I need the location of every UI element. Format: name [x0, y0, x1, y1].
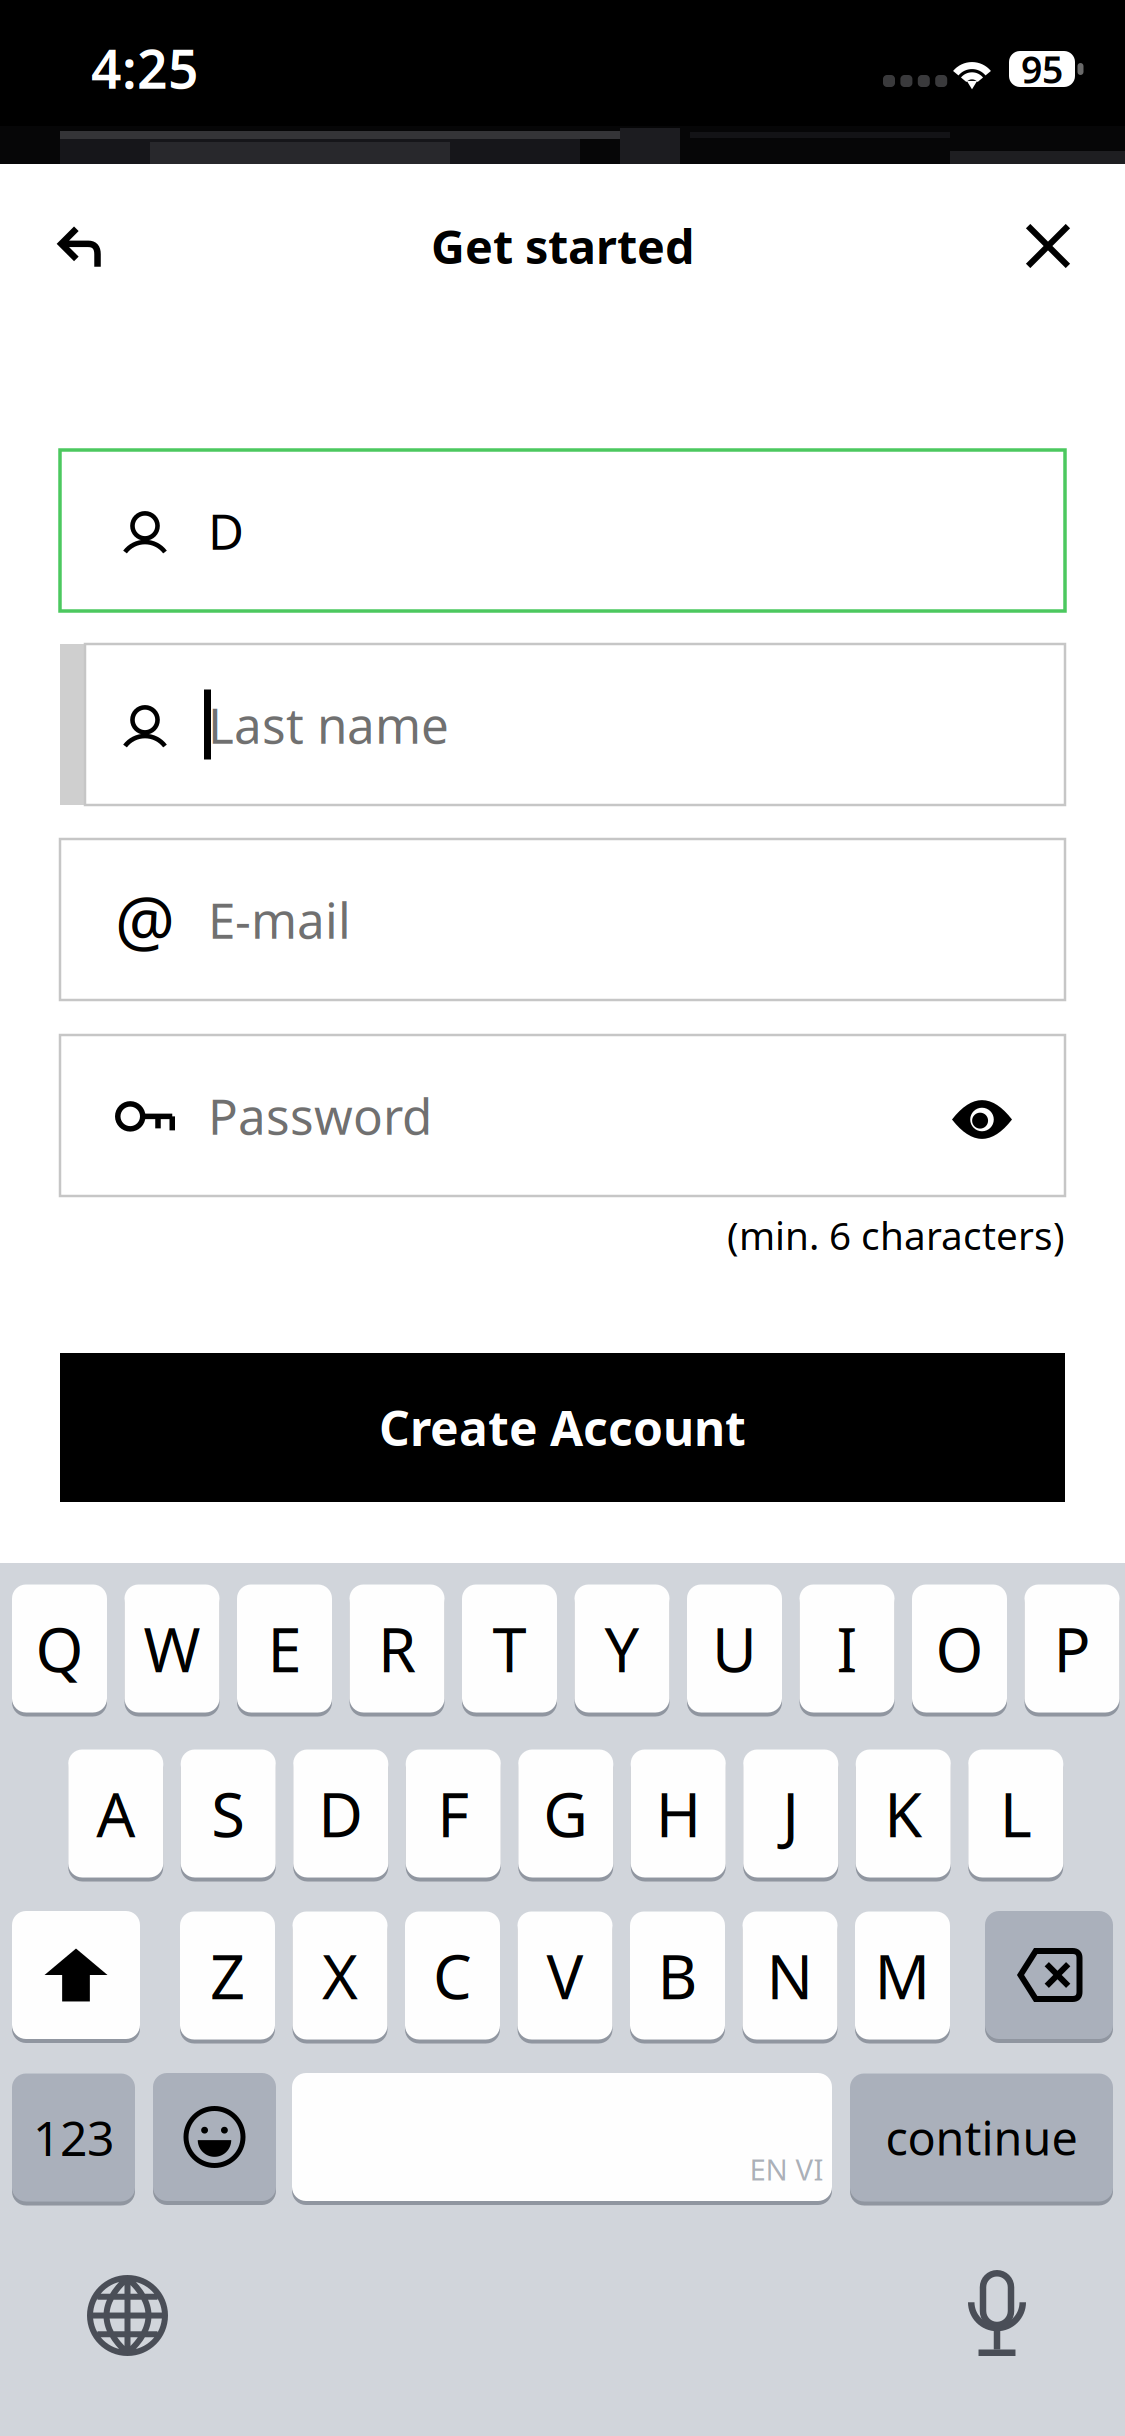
- button[interactable]: Last name: [85, 644, 1065, 805]
- staticText: Create Account: [379, 1396, 746, 1459]
- button[interactable]: Delete: [985, 1911, 1113, 2044]
- staticText: W: [143, 1608, 200, 1689]
- staticText: EN VI: [749, 2149, 823, 2188]
- button[interactable]: Y: [574, 1584, 669, 1716]
- staticText: continue: [885, 2106, 1077, 2168]
- staticText: N: [766, 1935, 813, 2016]
- button[interactable]: T: [462, 1584, 557, 1716]
- button[interactable]: K: [856, 1749, 951, 1881]
- button[interactable]: X: [292, 1911, 387, 2043]
- staticText: P: [1053, 1608, 1090, 1689]
- staticText: U: [712, 1608, 757, 1689]
- button[interactable]: Next keyboard: [87, 2275, 168, 2356]
- button[interactable]: I: [799, 1584, 894, 1716]
- button[interactable]: Close: [1006, 204, 1090, 288]
- button[interactable]: Shift: [12, 1911, 140, 2044]
- staticText: V: [546, 1935, 583, 2016]
- staticText: R: [378, 1608, 416, 1689]
- staticText: Y: [604, 1608, 639, 1689]
- staticText: E-mail: [208, 887, 351, 952]
- button[interactable]: @: [60, 839, 1065, 1000]
- button[interactable]: 123: [12, 2073, 135, 2205]
- staticText: 4:25: [91, 33, 199, 103]
- staticText: Get started: [431, 215, 694, 277]
- button[interactable]: Q: [12, 1584, 107, 1716]
- button[interactable]: Dictate: [969, 2270, 1025, 2356]
- button[interactable]: Show password: [927, 1035, 1037, 1196]
- button[interactable]: V: [517, 1911, 612, 2043]
- button[interactable]: E: [237, 1584, 332, 1716]
- button[interactable]: J: [743, 1749, 838, 1881]
- button[interactable]: U: [687, 1584, 782, 1716]
- button[interactable]: A: [68, 1749, 163, 1881]
- button[interactable]: C: [405, 1911, 500, 2043]
- staticText: C: [433, 1935, 472, 2016]
- button[interactable]: continue: [850, 2073, 1113, 2205]
- button[interactable]: D: [60, 450, 1065, 611]
- button[interactable]: L: [968, 1749, 1063, 1881]
- button[interactable]: F: [406, 1749, 501, 1881]
- button[interactable]: B: [630, 1911, 725, 2043]
- staticText: B: [657, 1935, 697, 2016]
- staticText: X: [322, 1935, 358, 2016]
- button[interactable]: Space: [292, 2073, 832, 2206]
- staticText: E: [267, 1608, 301, 1689]
- button[interactable]: Z: [180, 1911, 275, 2043]
- staticText: G: [543, 1773, 588, 1854]
- staticText: S: [211, 1773, 245, 1854]
- button[interactable]: M: [855, 1911, 950, 2043]
- staticText: I: [836, 1608, 857, 1689]
- staticText: F: [437, 1773, 469, 1854]
- staticText: T: [492, 1608, 526, 1689]
- staticText: D: [318, 1773, 363, 1854]
- button[interactable]: W: [124, 1584, 219, 1716]
- staticText: A: [96, 1773, 135, 1854]
- staticText: O: [935, 1608, 983, 1689]
- staticText: Password: [208, 1083, 432, 1148]
- staticText: 123: [33, 2106, 114, 2169]
- button[interactable]: N: [742, 1911, 837, 2043]
- staticText: K: [884, 1773, 922, 1854]
- button[interactable]: H: [631, 1749, 726, 1881]
- staticText: Q: [35, 1608, 83, 1689]
- staticText: M: [874, 1935, 930, 2016]
- button[interactable]: R: [349, 1584, 444, 1716]
- button[interactable]: Back: [42, 206, 126, 290]
- staticText: Last name: [208, 692, 449, 757]
- button[interactable]: D: [293, 1749, 388, 1881]
- button[interactable]: O: [912, 1584, 1007, 1716]
- staticText: Z: [210, 1935, 245, 2016]
- button[interactable]: Emoji: [153, 2073, 276, 2206]
- button[interactable]: G: [518, 1749, 613, 1881]
- staticText: L: [1000, 1773, 1032, 1854]
- button[interactable]: Create Account: [60, 1353, 1065, 1502]
- staticText: D: [208, 498, 244, 563]
- staticText: H: [656, 1773, 701, 1854]
- staticText: J: [782, 1773, 799, 1854]
- staticText: 95: [1021, 44, 1063, 94]
- staticText: @: [115, 875, 175, 964]
- button[interactable]: P: [1024, 1584, 1119, 1716]
- staticText: (min. 6 characters): [727, 1209, 1065, 1261]
- button[interactable]: S: [181, 1749, 276, 1881]
